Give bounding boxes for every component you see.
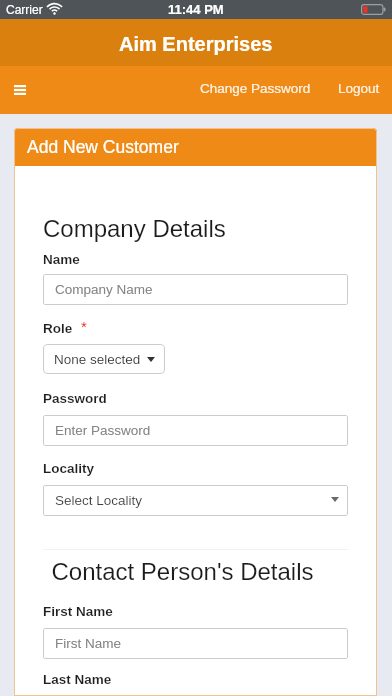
staticText: Password	[43, 391, 107, 406]
button[interactable]: First Name	[43, 628, 348, 659]
staticText: Role	[43, 321, 73, 336]
staticText: Name	[43, 252, 80, 267]
staticText: First Name	[43, 604, 113, 619]
staticText: Logout	[338, 81, 380, 96]
staticText: Locality	[43, 461, 95, 476]
staticText: First Name	[55, 636, 122, 651]
staticText: 11:44 PM	[168, 2, 224, 17]
staticText: Aim Enterprises	[119, 33, 273, 55]
staticText: Carrier	[6, 3, 43, 16]
button[interactable]: Menu	[0, 70, 40, 110]
staticText: *	[81, 318, 87, 334]
staticText: Change Password	[200, 81, 311, 96]
staticText: Contact Person's Details	[30, 558, 335, 585]
staticText: None selected	[54, 352, 141, 367]
staticText: Company Name	[55, 282, 153, 297]
button[interactable]: None selected	[43, 344, 165, 374]
staticText: Add New Customer	[27, 137, 179, 157]
button[interactable]: Enter Password	[43, 415, 348, 446]
button[interactable]: Company Name	[43, 274, 348, 305]
button[interactable]: Logout	[330, 69, 388, 108]
staticText: Select Locality	[55, 493, 143, 508]
staticText: Last Name	[43, 672, 112, 687]
button[interactable]: Change Password	[192, 69, 319, 108]
staticText: Enter Password	[55, 423, 151, 438]
staticText: Company Details	[43, 215, 226, 242]
button[interactable]: Select Locality	[43, 485, 348, 516]
